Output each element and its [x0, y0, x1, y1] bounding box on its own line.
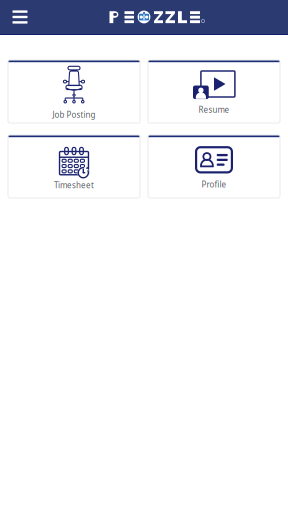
button[interactable]: Resume — [148, 60, 280, 123]
staticText: Timesheet — [54, 180, 94, 190]
button[interactable]: Profile — [148, 135, 280, 198]
staticText: Job Posting — [52, 109, 95, 120]
button[interactable]: Job Posting — [8, 60, 140, 123]
button[interactable]: Timesheet — [8, 135, 140, 198]
staticText: Resume — [198, 104, 229, 115]
button[interactable]: Menu — [7, 4, 33, 30]
staticText: Profile — [201, 179, 226, 190]
